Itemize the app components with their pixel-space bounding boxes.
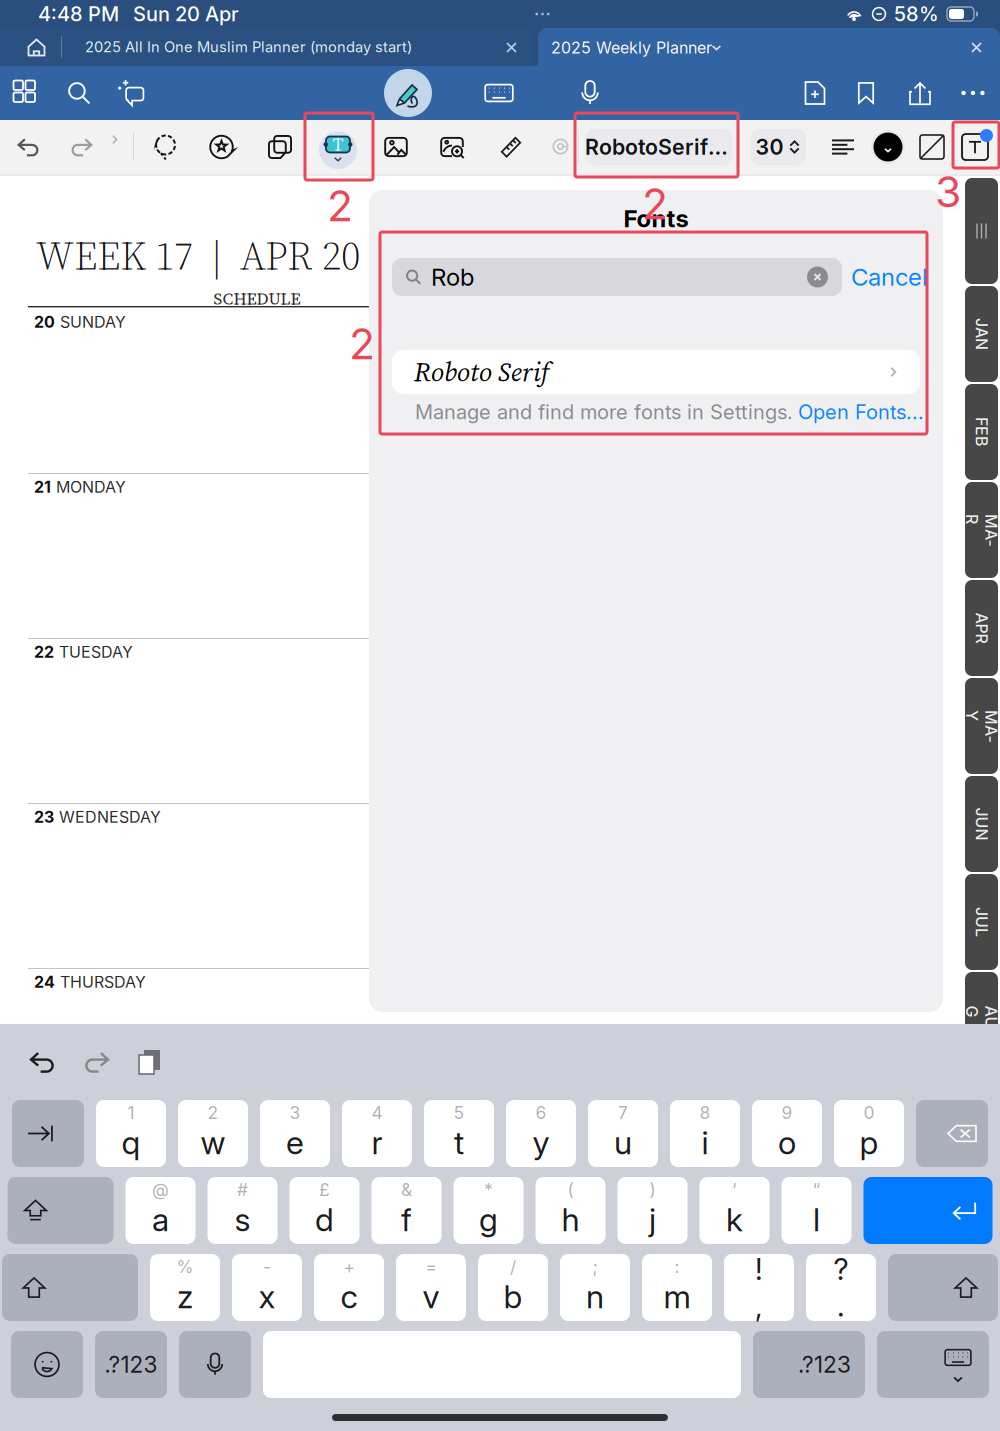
button[interactable]: Open Fonts... xyxy=(798,400,924,424)
button[interactable]: Dictate xyxy=(568,66,612,120)
button[interactable]: Ruler xyxy=(490,127,532,167)
staticText: m xyxy=(663,1277,690,1316)
button[interactable]: Emoji xyxy=(11,1331,83,1398)
button[interactable]: Text box xyxy=(958,130,992,164)
button[interactable]: Alignment xyxy=(824,129,862,165)
button[interactable]: Text tool xyxy=(313,126,363,174)
button[interactable]: APR xyxy=(965,580,998,676)
button[interactable]: RobotoSerif-... xyxy=(585,129,733,165)
button[interactable]: .?123 xyxy=(95,1331,167,1398)
button[interactable]: = xyxy=(396,1254,466,1321)
button[interactable]: Add page xyxy=(793,66,837,120)
button[interactable]: JUL xyxy=(965,874,998,970)
button[interactable]: / xyxy=(478,1254,548,1321)
button[interactable]: ) xyxy=(617,1177,687,1244)
button[interactable]: 6 xyxy=(506,1100,576,1167)
button[interactable]: Roboto Serif xyxy=(392,350,920,394)
staticText: ) xyxy=(649,1179,655,1200)
button[interactable]: Duplicate xyxy=(259,127,301,167)
button[interactable]: Redo xyxy=(59,127,103,167)
button[interactable]: % xyxy=(150,1254,220,1321)
staticText: l xyxy=(813,1200,820,1239)
button[interactable]: 7 xyxy=(588,1100,658,1167)
button[interactable]: Tab xyxy=(12,1100,84,1167)
button[interactable]: Pen tool xyxy=(384,69,432,117)
button[interactable]: £ xyxy=(289,1177,359,1244)
button[interactable]: 2025 All In One Muslim Planner (monday s… xyxy=(0,28,533,66)
button[interactable]: Search xyxy=(57,66,101,120)
button[interactable]: + xyxy=(314,1254,384,1321)
button[interactable]: Index xyxy=(965,178,998,284)
button[interactable]: 1 xyxy=(96,1100,166,1167)
staticText: f xyxy=(401,1200,412,1239)
staticText: SUNDAY xyxy=(60,312,126,332)
button[interactable]: Hide keyboard xyxy=(877,1331,989,1398)
button[interactable]: 2025 Weekly Planner xyxy=(538,28,1000,66)
button[interactable]: Keyboard xyxy=(477,66,521,120)
staticText: 0 xyxy=(863,1102,874,1123)
button[interactable]: Return xyxy=(863,1177,992,1244)
button[interactable]: 9 xyxy=(752,1100,822,1167)
button[interactable]: AUG xyxy=(965,972,998,1068)
button[interactable]: 0 xyxy=(834,1100,904,1167)
button[interactable]: Shift xyxy=(888,1254,998,1321)
button[interactable]: Paste xyxy=(129,1039,171,1085)
button[interactable]: 30 xyxy=(751,129,806,165)
button[interactable]: : xyxy=(642,1254,712,1321)
staticText: FEB xyxy=(966,422,996,442)
button[interactable]: MAR xyxy=(965,482,998,578)
staticText: 23 xyxy=(34,807,54,827)
button[interactable]: Find sticker xyxy=(431,127,473,167)
button[interactable]: ‘ xyxy=(699,1177,769,1244)
button[interactable]: Redo xyxy=(75,1039,117,1085)
button[interactable]: MAY xyxy=(965,678,998,774)
button[interactable]: FEB xyxy=(965,384,998,480)
button[interactable]: JUN xyxy=(965,776,998,872)
button[interactable]: Insert image xyxy=(375,127,417,167)
staticText: o xyxy=(778,1123,796,1162)
button[interactable]: # xyxy=(207,1177,277,1244)
button[interactable]: Delete xyxy=(916,1100,988,1167)
button[interactable]: Caps lock xyxy=(7,1177,113,1244)
button[interactable]: 4 xyxy=(342,1100,412,1167)
button[interactable]: Colour xyxy=(871,130,905,164)
button[interactable]: ; xyxy=(560,1254,630,1321)
button[interactable]: * xyxy=(453,1177,523,1244)
button[interactable]: ! xyxy=(724,1254,794,1321)
button[interactable]: @ xyxy=(125,1177,195,1244)
staticText: q xyxy=(121,1123,140,1162)
button[interactable]: - xyxy=(232,1254,302,1321)
button[interactable]: Undo xyxy=(22,1039,64,1085)
button[interactable]: Lasso xyxy=(145,127,187,167)
button[interactable]: Numbers xyxy=(753,1331,865,1398)
button[interactable]: Share xyxy=(898,66,942,120)
button[interactable]: Dictate xyxy=(179,1331,251,1398)
button[interactable]: Opacity xyxy=(916,131,948,163)
button[interactable]: 3 xyxy=(260,1100,330,1167)
staticText: 4:48 PM xyxy=(38,2,119,26)
button[interactable]: More xyxy=(951,66,995,120)
button[interactable]: JAN xyxy=(965,286,998,382)
button[interactable]: Sticker xyxy=(201,127,243,167)
staticText: . xyxy=(837,1288,845,1323)
button[interactable]: AI assistant xyxy=(109,66,153,120)
button[interactable]: Bookmark xyxy=(844,66,888,120)
button[interactable]: 2 xyxy=(178,1100,248,1167)
staticText: 9 xyxy=(781,1102,792,1123)
button[interactable]: Undo xyxy=(7,127,51,167)
button[interactable]: “ xyxy=(781,1177,851,1244)
button[interactable]: Shift xyxy=(2,1254,138,1321)
button[interactable]: ? xyxy=(806,1254,876,1321)
button[interactable]: ( xyxy=(535,1177,605,1244)
button[interactable]: 8 xyxy=(670,1100,740,1167)
button[interactable]: 5 xyxy=(424,1100,494,1167)
button[interactable]: Pages xyxy=(4,66,48,120)
staticText: / xyxy=(510,1256,516,1277)
staticText: “ xyxy=(812,1179,820,1200)
staticText: 2 xyxy=(207,1102,218,1123)
button[interactable]: & xyxy=(371,1177,441,1244)
button[interactable]: Cancel xyxy=(851,258,943,296)
staticText: RobotoSerif-... xyxy=(585,134,733,160)
staticText: & xyxy=(401,1179,412,1200)
